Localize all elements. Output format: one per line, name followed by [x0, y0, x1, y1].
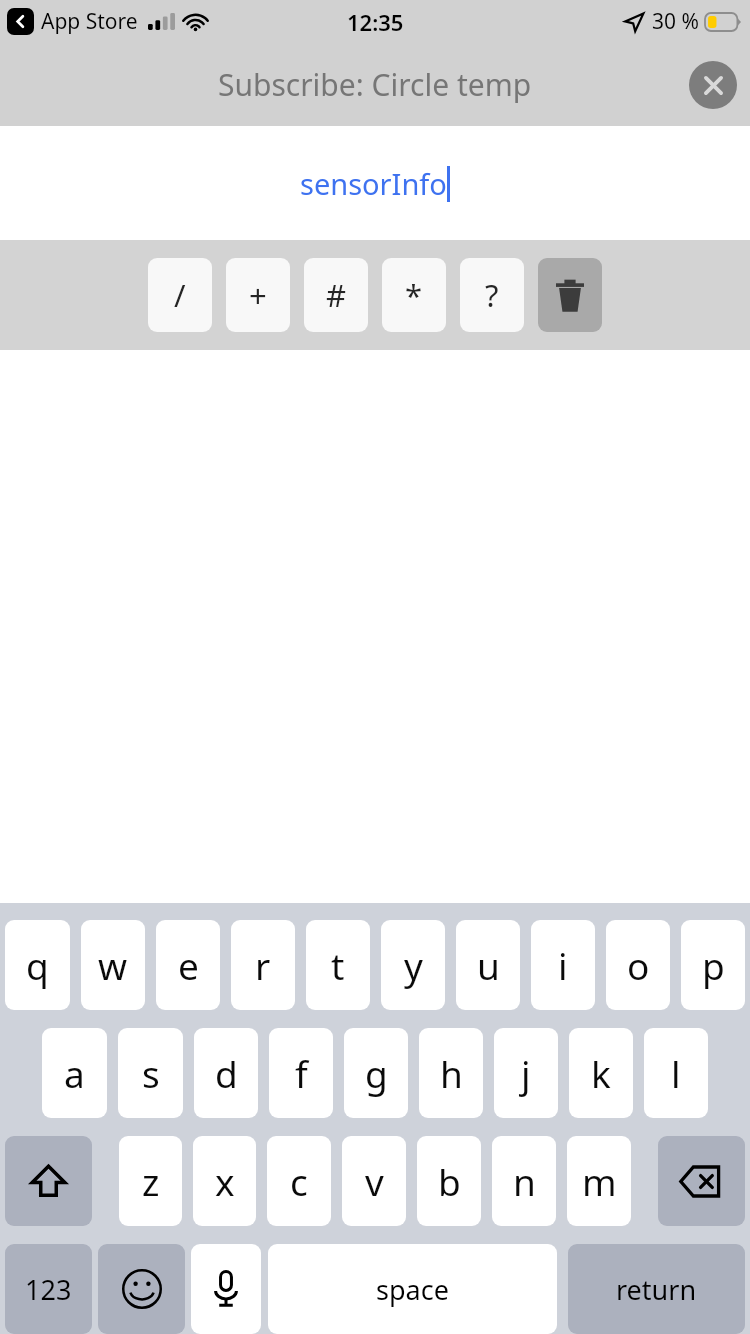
button[interactable]: q	[5, 920, 70, 1010]
button[interactable]: b	[417, 1136, 481, 1226]
button[interactable]: p	[681, 920, 745, 1010]
staticText: 12:35	[347, 7, 404, 37]
button[interactable]: d	[194, 1028, 258, 1118]
button[interactable]: l	[644, 1028, 708, 1118]
staticText: return	[616, 1271, 697, 1308]
staticText: +	[249, 274, 267, 316]
staticText: c	[290, 1156, 308, 1206]
button[interactable]: m	[567, 1136, 631, 1226]
staticText: space	[376, 1271, 449, 1308]
staticText: l	[671, 1048, 681, 1098]
staticText: a	[64, 1048, 85, 1098]
button[interactable]: i	[531, 920, 595, 1010]
button[interactable]: a	[42, 1028, 107, 1118]
staticText: h	[440, 1048, 463, 1098]
button[interactable]: h	[419, 1028, 483, 1118]
staticText: Subscribe: Circle temp	[218, 64, 532, 105]
button[interactable]: w	[81, 920, 145, 1010]
staticText: b	[438, 1156, 461, 1206]
button[interactable]: space	[268, 1244, 557, 1334]
button[interactable]: o	[606, 920, 670, 1010]
staticText: ?	[485, 274, 499, 316]
button[interactable]: y	[381, 920, 445, 1010]
button[interactable]: +	[226, 258, 290, 332]
button[interactable]: k	[569, 1028, 633, 1118]
staticText: n	[513, 1156, 536, 1206]
staticText: g	[365, 1048, 388, 1098]
staticText: i	[558, 940, 568, 990]
button[interactable]: u	[456, 920, 520, 1010]
staticText: z	[142, 1156, 160, 1206]
staticText: m	[582, 1156, 617, 1206]
button[interactable]: ?	[460, 258, 524, 332]
button[interactable]: Close	[689, 61, 737, 109]
staticText: s	[142, 1048, 160, 1098]
button[interactable]: v	[342, 1136, 406, 1226]
staticText: sensorInfo	[300, 164, 447, 203]
button[interactable]: n	[492, 1136, 556, 1226]
button[interactable]: Shift	[5, 1136, 92, 1226]
staticText: k	[591, 1048, 611, 1098]
button[interactable]: e	[156, 920, 220, 1010]
button[interactable]: z	[119, 1136, 182, 1226]
button[interactable]: Emoji	[98, 1244, 185, 1334]
staticText: 123	[25, 1271, 72, 1308]
button[interactable]: #	[304, 258, 368, 332]
staticText: w	[98, 940, 128, 990]
staticText: r	[255, 940, 271, 990]
staticText: App Store	[41, 7, 138, 36]
button[interactable]: return	[568, 1244, 745, 1334]
button[interactable]: /	[148, 258, 212, 332]
staticText: f	[295, 1048, 308, 1098]
button[interactable]: *	[382, 258, 446, 332]
button[interactable]: Delete	[538, 258, 602, 332]
staticText: j	[521, 1048, 531, 1098]
button[interactable]: sensorInfo	[300, 164, 450, 203]
button[interactable]: 123	[5, 1244, 92, 1334]
staticText: q	[26, 940, 49, 990]
staticText: o	[627, 940, 650, 990]
staticText: /	[174, 274, 186, 316]
staticText: t	[331, 940, 345, 990]
staticText: v	[365, 1156, 384, 1206]
button[interactable]: r	[231, 920, 295, 1010]
staticText: p	[702, 940, 725, 990]
button[interactable]: j	[494, 1028, 558, 1118]
staticText: u	[477, 940, 500, 990]
button[interactable]: f	[269, 1028, 333, 1118]
staticText: *	[405, 274, 423, 316]
staticText: 30 %	[652, 7, 699, 36]
button[interactable]: t	[306, 920, 370, 1010]
button[interactable]: x	[193, 1136, 256, 1226]
staticText: #	[326, 274, 347, 316]
staticText: y	[404, 940, 423, 990]
button[interactable]: s	[118, 1028, 183, 1118]
button[interactable]: Backspace	[658, 1136, 745, 1226]
button[interactable]: c	[267, 1136, 331, 1226]
staticText: e	[178, 940, 199, 990]
staticText: d	[215, 1048, 238, 1098]
button[interactable]: g	[344, 1028, 408, 1118]
staticText: x	[215, 1156, 235, 1206]
button[interactable]: Dictation	[191, 1244, 261, 1334]
